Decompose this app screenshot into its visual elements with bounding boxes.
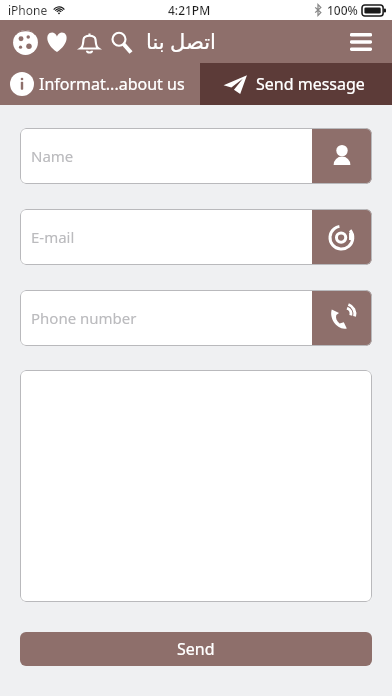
staticText: Send: [177, 638, 215, 660]
staticText: اتصل بنا: [146, 27, 216, 56]
staticText: Name: [31, 146, 74, 166]
staticText: 100%: [327, 2, 358, 18]
button[interactable]: Favorites: [42, 27, 72, 57]
button[interactable]: Send message: [222, 63, 392, 105]
staticText: iPhone: [8, 2, 48, 18]
staticText: Send message: [256, 73, 365, 95]
button[interactable]: Search: [106, 27, 136, 57]
button[interactable]: E-mail: [20, 209, 372, 265]
button[interactable]: Phone number: [20, 290, 372, 346]
staticText: 4:21PM: [168, 2, 211, 18]
staticText: E-mail: [31, 227, 75, 247]
button[interactable]: Informat...about us: [10, 63, 200, 105]
button[interactable]: Send: [20, 632, 372, 666]
button[interactable]: Notifications: [74, 27, 104, 57]
button[interactable]: Name: [20, 128, 372, 184]
button[interactable]: Language: [10, 27, 40, 57]
staticText: Phone number: [31, 308, 137, 328]
button[interactable]: Menu: [344, 25, 378, 59]
button[interactable]: [20, 370, 372, 602]
staticText: Informat...about us: [39, 73, 185, 95]
